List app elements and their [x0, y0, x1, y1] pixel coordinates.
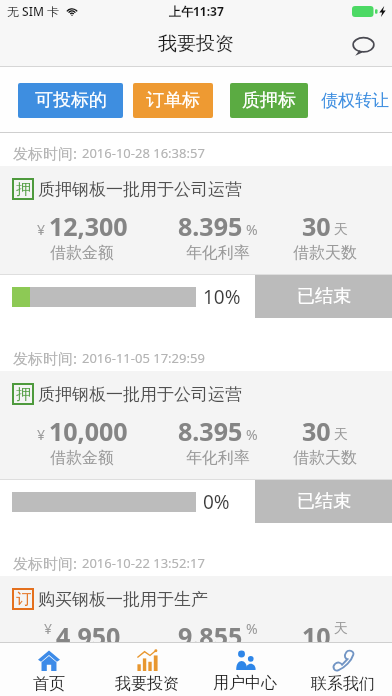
staticText: 无 SIM 卡 [7, 3, 60, 19]
staticText: 我要投资 [115, 674, 179, 694]
staticText: 首页 [33, 674, 65, 694]
staticText: 9.855 [178, 619, 243, 642]
staticText: 年化利率 [186, 243, 250, 263]
button[interactable]: 首页 [0, 642, 98, 696]
staticText: 已结束 [297, 490, 351, 513]
staticText: 天 [334, 221, 348, 239]
staticText: 可投标的 [35, 89, 107, 112]
staticText: 10 [302, 619, 331, 642]
staticText: 天 [334, 426, 348, 444]
staticText: 发标时间: [13, 143, 78, 163]
staticText: ¥ [37, 220, 46, 239]
staticText: ¥ [37, 425, 46, 444]
staticText: 购买钢板一批用于生产 [38, 589, 208, 610]
staticText: 借款金额 [50, 448, 114, 468]
staticText: 年化利率 [186, 448, 250, 468]
button[interactable]: 用户中心 [196, 642, 294, 696]
staticText: 我要投资 [158, 32, 234, 56]
staticText: 天 [334, 620, 348, 638]
staticText: 已结束 [297, 285, 351, 308]
staticText: 借款天数 [293, 448, 357, 468]
button[interactable]: Messages [346, 28, 380, 62]
staticText: 2016-10-22 13:52:17 [82, 554, 205, 572]
staticText: 2016-10-28 16:38:57 [82, 144, 205, 162]
button[interactable]: 已结束 [255, 275, 392, 318]
staticText: 8.395 [178, 209, 243, 243]
staticText: 押 [16, 385, 31, 404]
staticText: 质押标 [242, 89, 296, 112]
staticText: 2016-11-05 17:29:59 [82, 349, 205, 367]
staticText: 用户中心 [213, 673, 277, 693]
button[interactable]: 已结束 [255, 480, 392, 523]
button[interactable]: 质押标 [230, 83, 308, 118]
staticText: 上午11:37 [169, 3, 224, 19]
staticText: 押 [16, 180, 31, 199]
staticText: 发标时间: [13, 553, 78, 573]
staticText: % [246, 619, 258, 638]
button[interactable]: 发标时间: [0, 543, 392, 642]
staticText: 4,950 [56, 619, 121, 642]
staticText: 12,300 [49, 209, 128, 243]
staticText: 联系我们 [311, 674, 375, 694]
button[interactable]: 订单标 [133, 83, 213, 118]
staticText: 订 [16, 590, 31, 609]
button[interactable]: 发标时间: [0, 338, 392, 523]
button[interactable]: 债权转让 [319, 82, 391, 119]
button[interactable]: 可投标的 [18, 83, 123, 118]
staticText: 借款金额 [50, 243, 114, 263]
staticText: 质押钢板一批用于公司运营 [38, 179, 242, 200]
staticText: 0% [203, 489, 230, 515]
staticText: % [246, 425, 258, 444]
button[interactable]: 发标时间: [0, 133, 392, 318]
staticText: 债权转让 [321, 90, 389, 111]
staticText: 30 [302, 414, 331, 448]
staticText: 8.395 [178, 414, 243, 448]
staticText: 发标时间: [13, 348, 78, 368]
staticText: 30 [302, 209, 331, 243]
staticText: ¥ [44, 619, 53, 638]
staticText: 质押钢板一批用于公司运营 [38, 384, 242, 405]
button[interactable]: 联系我们 [294, 642, 392, 696]
staticText: 10,000 [49, 414, 128, 448]
staticText: % [246, 220, 258, 239]
staticText: 订单标 [146, 89, 200, 112]
button[interactable]: 我要投资 [98, 642, 196, 696]
staticText: 10% [203, 284, 241, 310]
staticText: 借款天数 [293, 243, 357, 263]
